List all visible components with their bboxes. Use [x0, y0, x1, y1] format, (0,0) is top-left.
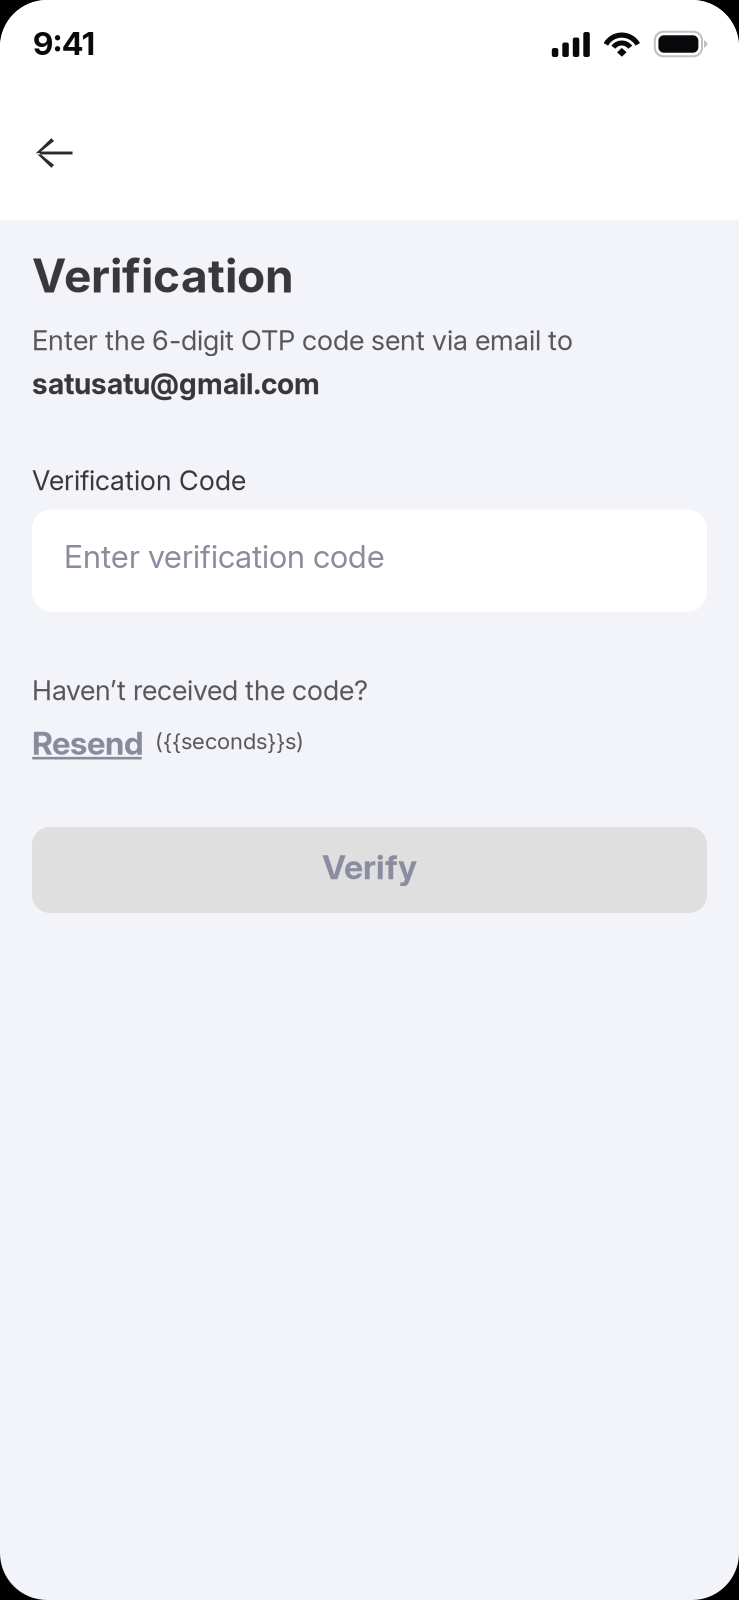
staticText: Verification Code	[32, 464, 246, 497]
button[interactable]: Back	[25, 122, 87, 184]
staticText: Enter the 6-digit OTP code sent via emai…	[32, 324, 573, 357]
button[interactable]: Enter verification code	[32, 509, 707, 612]
staticText: 9:41	[33, 24, 95, 63]
staticText: Enter verification code	[64, 537, 385, 576]
button[interactable]: Verify	[32, 827, 707, 913]
button[interactable]: Resend	[32, 724, 144, 762]
staticText: Verification	[32, 248, 294, 304]
staticText: satusatu@gmail.com	[32, 367, 320, 401]
staticText: Verify	[322, 847, 417, 887]
staticText: Haven’t received the code?	[32, 674, 368, 707]
staticText: Resend	[32, 724, 144, 762]
staticText: ({{seconds}}s)	[155, 728, 304, 754]
